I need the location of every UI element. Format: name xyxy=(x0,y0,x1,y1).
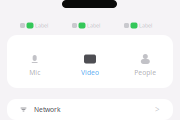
button[interactable]: Network xyxy=(7,99,173,120)
staticText: Network xyxy=(34,105,61,114)
staticText: Video xyxy=(81,68,99,77)
staticText: Label xyxy=(35,22,48,29)
button[interactable]: People xyxy=(118,35,173,88)
button[interactable]: Mic xyxy=(7,35,62,88)
staticText: Label xyxy=(139,22,152,29)
staticText: Label xyxy=(87,22,100,29)
staticText: Mic xyxy=(29,68,40,77)
staticText: People xyxy=(134,68,156,77)
staticText: > xyxy=(155,104,160,115)
button[interactable]: Video xyxy=(62,35,118,88)
